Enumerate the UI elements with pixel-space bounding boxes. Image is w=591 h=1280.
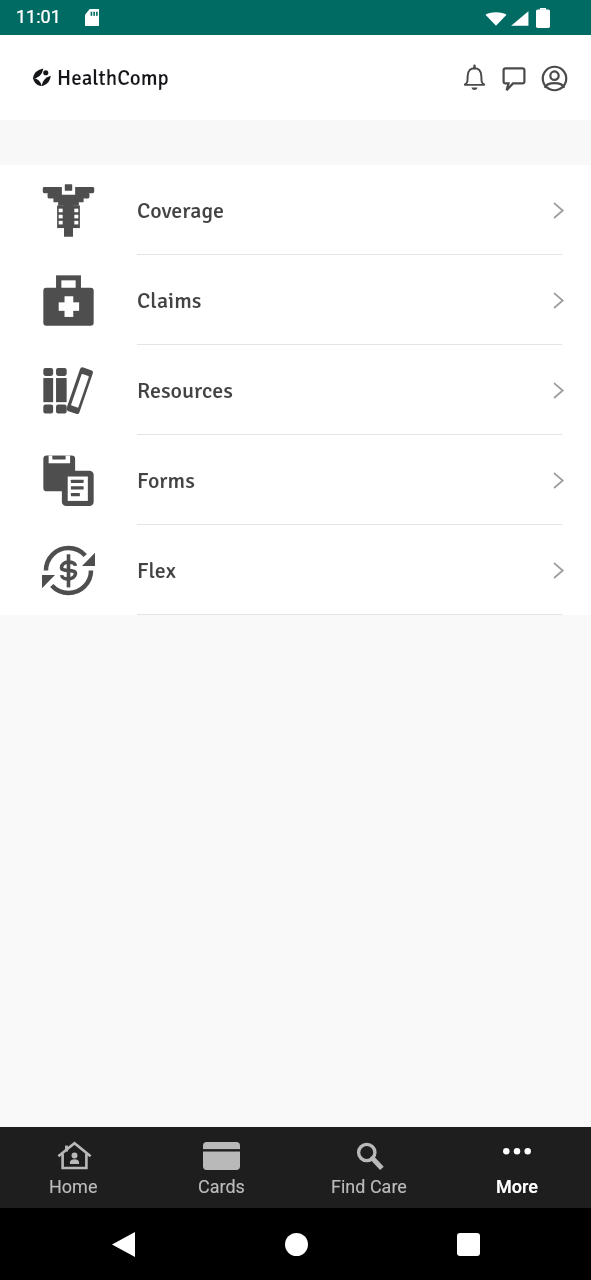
button[interactable]: Coverage bbox=[0, 165, 591, 255]
staticText: Claims bbox=[137, 287, 202, 314]
button[interactable]: Forms bbox=[0, 435, 591, 525]
staticText: Flex bbox=[137, 557, 177, 584]
staticText: More bbox=[496, 1176, 538, 1197]
button[interactable]: Recents bbox=[446, 1222, 490, 1266]
staticText: Coverage bbox=[137, 197, 225, 224]
staticText: Home bbox=[49, 1176, 98, 1197]
staticText: HealthComp bbox=[57, 65, 169, 91]
button[interactable]: Notifications bbox=[454, 58, 494, 98]
staticText: Resources bbox=[137, 377, 233, 404]
staticText: Cards bbox=[198, 1176, 245, 1197]
button[interactable]: Home bbox=[0, 1127, 147, 1208]
staticText: 11:01 bbox=[16, 6, 61, 27]
staticText: Forms bbox=[137, 467, 195, 494]
button[interactable]: Account bbox=[534, 58, 574, 98]
button[interactable]: Resources bbox=[0, 345, 591, 435]
staticText: Find Care bbox=[331, 1176, 407, 1197]
button[interactable]: Home bbox=[274, 1222, 318, 1266]
button[interactable]: Flex bbox=[0, 525, 591, 615]
button[interactable]: Cards bbox=[147, 1127, 295, 1208]
button[interactable]: Claims bbox=[0, 255, 591, 345]
button[interactable]: Back bbox=[101, 1222, 145, 1266]
button[interactable]: Messages bbox=[494, 58, 534, 98]
button[interactable]: Find Care bbox=[295, 1127, 443, 1208]
button[interactable]: More bbox=[443, 1127, 591, 1208]
